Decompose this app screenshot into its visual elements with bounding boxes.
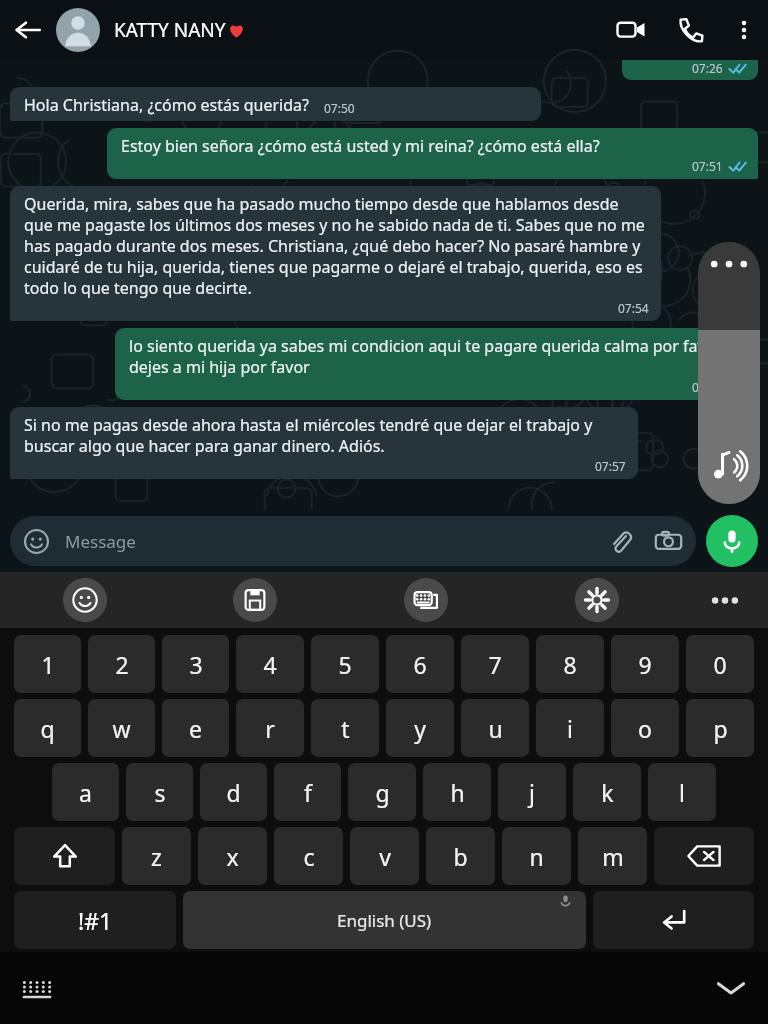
button[interactable]: u bbox=[461, 699, 529, 757]
button[interactable]: x bbox=[198, 827, 267, 885]
button[interactable]: KATTY NANY bbox=[114, 0, 600, 60]
button[interactable]: f bbox=[274, 763, 341, 821]
button[interactable]: Video call bbox=[600, 0, 662, 60]
staticText: 5 bbox=[338, 649, 352, 680]
button[interactable]: i bbox=[536, 699, 604, 757]
button[interactable]: g bbox=[348, 763, 416, 821]
button[interactable]: Keyboard layout bbox=[22, 965, 68, 1011]
staticText: 07:51 bbox=[692, 158, 723, 174]
staticText: d bbox=[226, 777, 241, 808]
button[interactable]: s bbox=[126, 763, 193, 821]
staticText: o bbox=[638, 713, 652, 744]
button[interactable]: 9 bbox=[611, 635, 679, 693]
staticText: 6 bbox=[413, 649, 427, 680]
staticText: v bbox=[379, 841, 391, 872]
button[interactable]: 3 bbox=[162, 635, 229, 693]
staticText: y bbox=[414, 713, 426, 744]
button[interactable]: Enter bbox=[593, 891, 754, 949]
staticText: 8 bbox=[563, 649, 577, 680]
button[interactable]: 7 bbox=[461, 635, 529, 693]
button[interactable]: Querida, mira, sabes que ha pasado mucho… bbox=[10, 186, 661, 321]
staticText: x bbox=[226, 841, 239, 872]
staticText: b bbox=[453, 841, 468, 872]
staticText: !#1 bbox=[78, 905, 113, 936]
staticText: 07:55 bbox=[692, 379, 723, 395]
button[interactable]: More bbox=[682, 572, 768, 628]
button[interactable]: n bbox=[502, 827, 571, 885]
staticText: m bbox=[602, 841, 624, 872]
button[interactable]: !#1 bbox=[14, 891, 176, 949]
button[interactable]: Emoji bbox=[63, 578, 107, 622]
staticText: 07:26 bbox=[692, 60, 723, 76]
button[interactable]: Camera bbox=[655, 528, 682, 555]
button[interactable]: Voice message bbox=[706, 515, 758, 567]
button[interactable]: Volume bbox=[698, 242, 760, 504]
button[interactable]: 07:26 bbox=[622, 60, 758, 80]
button[interactable]: c bbox=[274, 827, 343, 885]
staticText: 07:57 bbox=[595, 458, 626, 474]
button[interactable]: 2 bbox=[88, 635, 155, 693]
staticText: 1 bbox=[41, 649, 55, 680]
button[interactable]: j bbox=[498, 763, 566, 821]
button[interactable]: e bbox=[162, 699, 229, 757]
button[interactable]: Backspace bbox=[654, 827, 754, 885]
staticText: r bbox=[265, 713, 275, 744]
staticText: 3 bbox=[189, 649, 203, 680]
button[interactable]: Settings bbox=[575, 578, 619, 622]
button[interactable]: 8 bbox=[536, 635, 604, 693]
button[interactable]: Estoy bien señora ¿cómo está usted y mi … bbox=[107, 128, 758, 179]
button[interactable]: a bbox=[52, 763, 119, 821]
staticText: 07:50 bbox=[324, 100, 355, 116]
button[interactable]: p bbox=[686, 699, 754, 757]
button[interactable]: English (US) bbox=[183, 891, 586, 949]
staticText: u bbox=[488, 713, 503, 744]
button[interactable]: l bbox=[648, 763, 716, 821]
button[interactable]: 1 bbox=[14, 635, 81, 693]
button[interactable]: Si no me pagas desde ahora hasta el miér… bbox=[10, 407, 638, 479]
staticText: Hola Christiana, ¿cómo estás querida? bbox=[24, 94, 310, 116]
button[interactable]: Message bbox=[10, 516, 696, 566]
staticText: s bbox=[154, 777, 166, 808]
button[interactable]: Attach bbox=[608, 529, 633, 554]
button[interactable]: Back bbox=[0, 0, 56, 60]
staticText: g bbox=[375, 777, 390, 808]
button[interactable]: 0 bbox=[686, 635, 754, 693]
button[interactable]: Voice call bbox=[662, 0, 720, 60]
button[interactable]: q bbox=[14, 699, 81, 757]
staticText: p bbox=[713, 713, 728, 744]
staticText: f bbox=[304, 777, 312, 808]
staticText: l bbox=[679, 777, 685, 808]
staticText: 0 bbox=[713, 649, 727, 680]
button[interactable]: k bbox=[573, 763, 641, 821]
button[interactable]: h bbox=[423, 763, 491, 821]
button[interactable]: m bbox=[578, 827, 647, 885]
button[interactable]: Contact photo bbox=[56, 8, 100, 52]
staticText: 9 bbox=[638, 649, 652, 680]
staticText: Estoy bien señora ¿cómo está usted y mi … bbox=[121, 135, 600, 157]
button[interactable]: 5 bbox=[311, 635, 379, 693]
staticText: English (US) bbox=[337, 909, 432, 932]
button[interactable]: y bbox=[386, 699, 454, 757]
button[interactable]: Keyboard switch bbox=[404, 578, 448, 622]
staticText: q bbox=[40, 713, 55, 744]
button[interactable]: Shift bbox=[14, 827, 115, 885]
button[interactable]: r bbox=[236, 699, 304, 757]
button[interactable]: z bbox=[122, 827, 191, 885]
button[interactable]: o bbox=[611, 699, 679, 757]
staticText: k bbox=[601, 777, 614, 808]
staticText: Si no me pagas desde ahora hasta el miér… bbox=[24, 414, 626, 457]
button[interactable]: t bbox=[311, 699, 379, 757]
button[interactable]: w bbox=[88, 699, 155, 757]
button[interactable]: Hola Christiana, ¿cómo estás querida? bbox=[10, 87, 541, 121]
button[interactable]: 4 bbox=[236, 635, 304, 693]
button[interactable]: lo siento querida ya sabes mi condicion … bbox=[115, 328, 758, 400]
button[interactable]: 6 bbox=[386, 635, 454, 693]
button[interactable]: v bbox=[350, 827, 419, 885]
button[interactable]: Clipboard bbox=[233, 578, 277, 622]
button[interactable]: Hide keyboard bbox=[700, 965, 746, 1011]
button[interactable]: More options bbox=[720, 0, 768, 60]
staticText: 2 bbox=[115, 649, 129, 680]
button[interactable]: b bbox=[426, 827, 495, 885]
button[interactable]: d bbox=[200, 763, 267, 821]
staticText: Querida, mira, sabes que ha pasado mucho… bbox=[24, 193, 649, 299]
